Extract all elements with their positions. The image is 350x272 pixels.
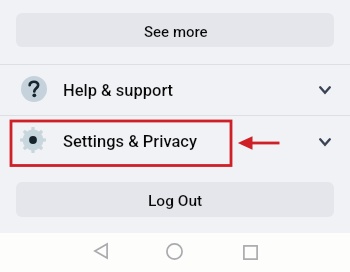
button[interactable]: See more (16, 13, 334, 47)
button[interactable]: Home (149, 232, 199, 270)
button[interactable]: Back (76, 232, 126, 270)
button[interactable]: Settings & Privacy (0, 116, 350, 167)
button[interactable]: Recent apps (225, 233, 275, 271)
staticText: Help & support (63, 81, 174, 100)
button[interactable]: Log Out (16, 182, 334, 217)
button[interactable]: Help & support (0, 65, 350, 115)
staticText: See more (144, 23, 208, 41)
staticText: Log Out (148, 192, 203, 210)
staticText: Settings & Privacy (63, 132, 198, 151)
